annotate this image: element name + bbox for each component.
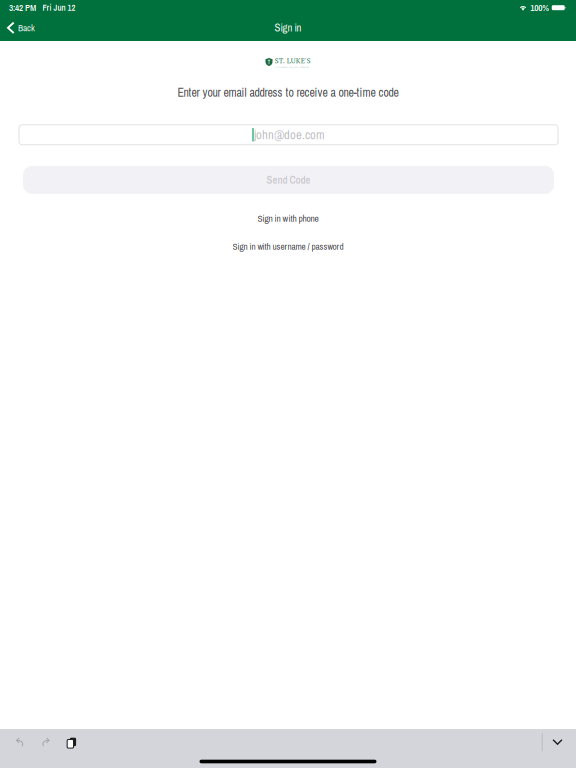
button[interactable]: Sign in with phone bbox=[247, 210, 328, 226]
button[interactable]: Hide keyboard bbox=[543, 729, 572, 755]
button[interactable]: Undo bbox=[8, 729, 33, 755]
staticText: 100% bbox=[530, 1, 549, 14]
staticText: Sign in bbox=[274, 20, 301, 35]
staticText: 3:42 PM bbox=[9, 1, 36, 14]
staticText: Send Code bbox=[266, 173, 310, 187]
button[interactable]: Paste bbox=[58, 729, 82, 755]
button[interactable]: Send Code bbox=[23, 166, 554, 194]
staticText: Back bbox=[18, 22, 35, 34]
staticText: Enter your email address to receive a on… bbox=[177, 84, 398, 100]
staticText: ST. LUKE'S bbox=[275, 56, 311, 65]
staticText: john@doe.com bbox=[254, 126, 325, 143]
button[interactable]: Redo bbox=[33, 729, 58, 755]
staticText: Fri Jun 12 bbox=[43, 2, 76, 13]
staticText: UNIVERSITY HEALTH NETWORK bbox=[275, 65, 309, 68]
staticText: Sign in with phone bbox=[257, 212, 318, 225]
button[interactable]: Sign in with username / password bbox=[222, 238, 353, 254]
button[interactable]: Back bbox=[0, 17, 43, 41]
staticText: Sign in with username / password bbox=[232, 240, 343, 253]
